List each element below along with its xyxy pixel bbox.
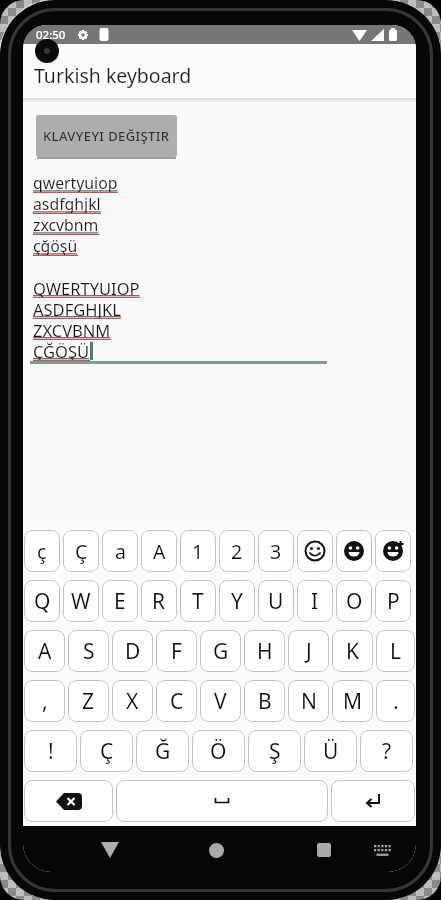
button[interactable]: P <box>375 580 411 622</box>
button[interactable]: H <box>244 630 285 672</box>
button[interactable]: F <box>156 630 197 672</box>
staticText: W <box>71 587 91 616</box>
staticText: M <box>343 687 363 716</box>
button[interactable]: S <box>68 630 109 672</box>
button[interactable]: G <box>200 630 241 672</box>
staticText: C <box>170 687 184 716</box>
staticText: 02:50 <box>36 27 66 43</box>
button[interactable] <box>199 833 233 867</box>
button[interactable]: K <box>332 630 373 672</box>
button[interactable]: D <box>112 630 153 672</box>
button[interactable]: KLAVYEYI DEĞIŞTIR <box>36 115 177 157</box>
staticText: çğöşü <box>33 235 78 256</box>
button[interactable] <box>375 530 411 572</box>
staticText: R <box>152 587 166 616</box>
staticText: V <box>214 687 227 716</box>
staticText: 3 <box>270 538 282 565</box>
staticText: A <box>38 637 52 666</box>
button[interactable]: ç <box>24 530 60 572</box>
button[interactable]: 2 <box>219 530 255 572</box>
button[interactable] <box>307 833 341 867</box>
staticText: KLAVYEYI DEĞIŞTIR <box>43 127 170 145</box>
button[interactable]: B <box>244 680 285 722</box>
staticText: J <box>306 637 312 666</box>
button[interactable]: 3 <box>258 530 294 572</box>
staticText: X <box>126 687 139 716</box>
staticText: H <box>257 637 273 666</box>
staticText: ! <box>48 737 54 766</box>
button[interactable]: V <box>200 680 241 722</box>
staticText: ASDFGHJKL <box>33 298 121 319</box>
button[interactable] <box>331 780 415 822</box>
button[interactable]: Ç <box>80 730 133 772</box>
button[interactable]: ! <box>24 730 77 772</box>
staticText: B <box>258 687 272 716</box>
button[interactable]: Ö <box>192 730 245 772</box>
button[interactable] <box>24 780 113 822</box>
staticText: Q <box>34 587 51 616</box>
button[interactable]: C <box>156 680 197 722</box>
button[interactable]: Ş <box>248 730 301 772</box>
staticText: 2 <box>231 538 243 565</box>
button[interactable]: A <box>141 530 177 572</box>
button[interactable] <box>297 530 333 572</box>
staticText: Y <box>231 587 243 616</box>
staticText: ÇĞÖŞÜ <box>33 340 90 361</box>
staticText: . <box>393 687 399 716</box>
staticText: zxcvbnm <box>33 214 99 235</box>
button[interactable]: R <box>141 580 177 622</box>
staticText: A <box>153 538 166 565</box>
button[interactable] <box>116 780 328 822</box>
button[interactable]: N <box>288 680 329 722</box>
button[interactable]: M <box>332 680 373 722</box>
button[interactable] <box>365 833 399 867</box>
button[interactable]: E <box>102 580 138 622</box>
button[interactable]: L <box>376 630 415 672</box>
staticText: P <box>387 587 400 616</box>
staticText: O <box>346 587 363 616</box>
staticText: , <box>42 687 48 716</box>
button[interactable]: O <box>336 580 372 622</box>
button[interactable]: Q <box>24 580 60 622</box>
staticText: ? <box>382 737 392 766</box>
button[interactable] <box>336 530 372 572</box>
staticText: QWERTYUIOP <box>33 277 140 298</box>
button[interactable]: Ğ <box>136 730 189 772</box>
button[interactable]: W <box>63 580 99 622</box>
button[interactable]: Ç <box>63 530 99 572</box>
button[interactable]: 1 <box>180 530 216 572</box>
button[interactable]: U <box>258 580 294 622</box>
button[interactable] <box>93 833 127 867</box>
staticText: Ö <box>210 737 227 766</box>
staticText: I <box>311 587 319 616</box>
button[interactable]: , <box>24 680 65 722</box>
staticText: D <box>125 637 141 666</box>
staticText: qwertyuiop <box>33 172 118 193</box>
staticText: K <box>346 637 359 666</box>
staticText: Ç <box>75 538 88 565</box>
button[interactable]: . <box>376 680 415 722</box>
staticText: T <box>192 587 204 616</box>
button[interactable]: A <box>24 630 65 672</box>
button[interactable]: Z <box>68 680 109 722</box>
button[interactable]: T <box>180 580 216 622</box>
staticText: S <box>83 637 95 666</box>
button[interactable]: Ü <box>304 730 357 772</box>
staticText: asdfghjkl <box>33 193 101 214</box>
staticText: a <box>115 538 126 565</box>
button[interactable]: X <box>112 680 153 722</box>
staticText: U <box>268 587 284 616</box>
button[interactable]: a <box>102 530 138 572</box>
staticText: Ş <box>269 737 281 766</box>
button[interactable]: I <box>297 580 333 622</box>
button[interactable]: J <box>288 630 329 672</box>
staticText: F <box>171 637 182 666</box>
staticText: Z <box>82 687 95 716</box>
button[interactable]: ? <box>360 730 413 772</box>
staticText: G <box>213 637 229 666</box>
staticText: E <box>114 587 126 616</box>
button[interactable]: Y <box>219 580 255 622</box>
staticText: 1 <box>192 538 204 565</box>
staticText: Ğ <box>155 737 171 766</box>
staticText: N <box>301 687 317 716</box>
